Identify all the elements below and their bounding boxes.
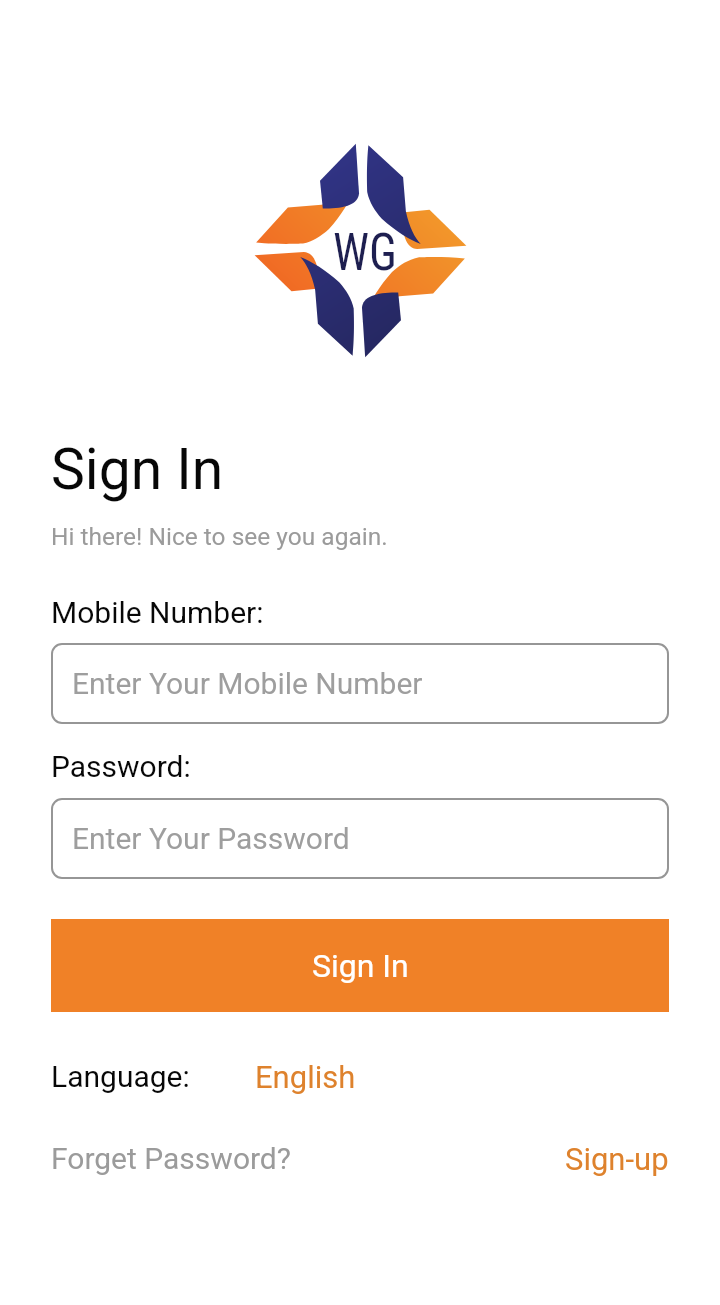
button[interactable]: Sign-up — [565, 1141, 669, 1177]
button[interactable]: Enter Your Password — [51, 798, 669, 879]
staticText: WG — [333, 222, 398, 283]
staticText: Password: — [51, 749, 191, 784]
staticText: Sign-up — [565, 1141, 669, 1177]
staticText: Enter Your Mobile Number — [72, 666, 423, 701]
staticText: Sign In — [312, 947, 409, 985]
staticText: Mobile Number: — [51, 595, 264, 630]
staticText: Language: — [51, 1059, 190, 1094]
staticText: Enter Your Password — [72, 821, 350, 856]
button[interactable]: Sign In — [51, 919, 669, 1012]
staticText: English — [255, 1059, 356, 1095]
staticText: Hi there! Nice to see you again. — [51, 522, 388, 551]
button[interactable]: Enter Your Mobile Number — [51, 643, 669, 724]
staticText: Forget Password? — [51, 1141, 291, 1176]
button[interactable]: Forget Password? — [51, 1141, 291, 1176]
other: WG logo — [254, 143, 467, 358]
staticText: Sign In — [51, 436, 224, 503]
button[interactable]: English — [255, 1059, 356, 1095]
